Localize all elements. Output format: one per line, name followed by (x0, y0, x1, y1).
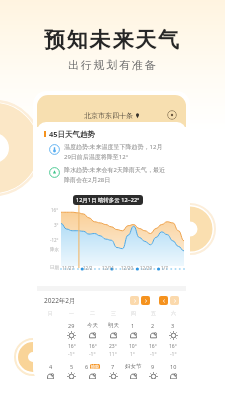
staticText: 10 (170, 363, 177, 370)
staticText: -12° (50, 237, 59, 243)
staticText: -1° (89, 351, 96, 358)
staticText: 12月1日 晴转多云 12~22° (76, 196, 140, 204)
staticText: 12/20 (121, 265, 133, 271)
staticText: 日 (48, 310, 53, 316)
staticText: 3° (54, 222, 59, 228)
staticText: 12/2 (83, 265, 93, 271)
staticText: 4 (49, 363, 53, 370)
staticText: 2 (151, 322, 155, 329)
staticText: 四 (131, 310, 136, 316)
staticText: -1° (170, 351, 177, 358)
staticText: 23° (109, 343, 117, 350)
button[interactable]: 6 (82, 363, 103, 379)
button[interactable]: 3 (163, 322, 183, 358)
staticText: 16° (149, 343, 157, 350)
button[interactable]: 5 (61, 363, 82, 379)
button[interactable]: Navigate (170, 296, 179, 305)
staticText: 今天 (87, 322, 98, 329)
staticText: 日期 (50, 265, 59, 271)
button[interactable]: Previous (159, 296, 168, 305)
button[interactable]: 7 (103, 363, 123, 379)
staticText: 1° (130, 351, 136, 358)
staticText: 16° (89, 343, 97, 350)
staticText: 11° (109, 351, 117, 358)
button[interactable]: 明天 (103, 322, 123, 358)
button[interactable]: 9 (143, 363, 163, 379)
staticText: 10° (129, 343, 137, 350)
button[interactable]: 1 (123, 322, 143, 358)
staticText: 北京市东四十条 (84, 111, 133, 120)
staticText: 降水趋势:未来会有2天降雨天气，最近 降雨会在2月28日 (64, 166, 166, 183)
staticText: 3 (171, 322, 175, 329)
staticText: 11/27 (62, 265, 74, 271)
staticText: 二 (90, 310, 95, 316)
staticText: 16° (51, 207, 59, 213)
staticText: 5 (70, 363, 74, 370)
staticText: -1° (68, 351, 75, 358)
staticText: 1 (131, 322, 135, 329)
staticText: 16° (68, 343, 76, 350)
staticText: 惊蛰 (91, 364, 99, 369)
staticText: 出行规划有准备 (68, 58, 158, 72)
staticText: 45日天气趋势 (49, 129, 96, 139)
button[interactable]: 10 (163, 363, 183, 379)
button[interactable]: Next (141, 296, 150, 305)
staticText: -1° (150, 351, 157, 358)
staticText: 12/11 (102, 265, 114, 271)
staticText: 29 (68, 322, 75, 329)
staticText: 9 (151, 363, 155, 370)
staticText: 2022年2月 (44, 296, 76, 305)
staticText: 预知未来天气 (44, 27, 181, 53)
staticText: 降水 (50, 247, 59, 253)
staticText: 明天 (108, 322, 119, 329)
button[interactable]: 妇女节 (123, 363, 143, 379)
staticText: 五 (151, 310, 156, 316)
staticText: 一 (69, 310, 74, 316)
button[interactable]: 2 (143, 322, 163, 358)
staticText: 12/29 (140, 265, 152, 271)
staticText: 6 (85, 363, 89, 370)
staticText: 三 (111, 310, 116, 316)
staticText: 温度趋势:未来温度呈下降趋势，12月 29日前后温度将降至12° (64, 143, 163, 160)
staticText: 六 (171, 310, 176, 316)
button[interactable]: 29 (61, 322, 82, 358)
staticText: 1/7 (161, 265, 168, 271)
button[interactable]: Navigate (130, 296, 139, 305)
button[interactable]: 今天 (82, 322, 103, 358)
staticText: 7 (111, 363, 115, 370)
staticText: 16° (169, 343, 177, 350)
button[interactable]: 4 (40, 363, 61, 379)
staticText: 妇女节 (125, 363, 142, 370)
button[interactable]: More options (167, 110, 177, 120)
